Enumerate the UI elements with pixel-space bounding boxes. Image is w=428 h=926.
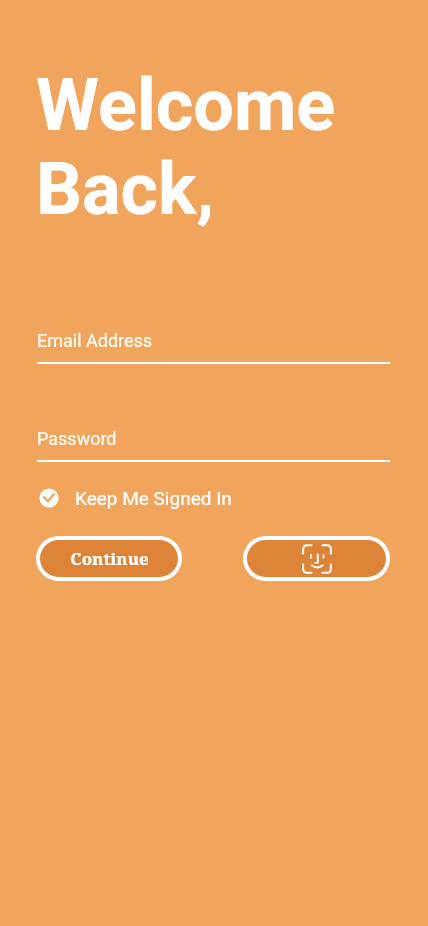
staticText: Keep Me Signed In [75, 487, 232, 509]
staticText: Password [37, 428, 117, 449]
staticText: Continue [70, 547, 149, 570]
staticText: Welcome Back, [36, 63, 336, 231]
button[interactable]: Sign in with Face ID [243, 536, 390, 581]
button[interactable]: Keep Me Signed In [38, 486, 232, 510]
button[interactable]: Password [37, 428, 390, 462]
button[interactable]: Email Address [37, 330, 390, 364]
button[interactable]: Continue [36, 536, 182, 581]
staticText: Email Address [37, 330, 153, 351]
